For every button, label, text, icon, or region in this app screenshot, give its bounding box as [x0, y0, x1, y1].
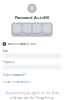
staticText: Notes [15, 33, 19, 35]
staticText: Email [3, 49, 9, 53]
button[interactable]: Create a new account [0, 80, 64, 83]
staticText: Mail [26, 33, 28, 35]
staticText: By continuing you agree to the Terms [5, 92, 58, 95]
staticText: Forgot password? [3, 73, 26, 77]
staticText: Files [35, 33, 38, 35]
button[interactable]: Files [33, 24, 41, 35]
staticText: Password [3, 60, 15, 64]
staticText: Create a new account [3, 80, 31, 83]
staticText: Password AutoFill [15, 15, 49, 20]
staticText: More [45, 33, 49, 35]
staticText: accounts.example.com [8, 42, 36, 46]
button[interactable]: More [42, 24, 51, 35]
button[interactable]: Forgot password? [0, 73, 64, 77]
button[interactable]: Mail [23, 24, 31, 35]
button[interactable]: Notes [13, 24, 21, 35]
staticText: of Service and the Privacy Policy. [10, 96, 54, 100]
